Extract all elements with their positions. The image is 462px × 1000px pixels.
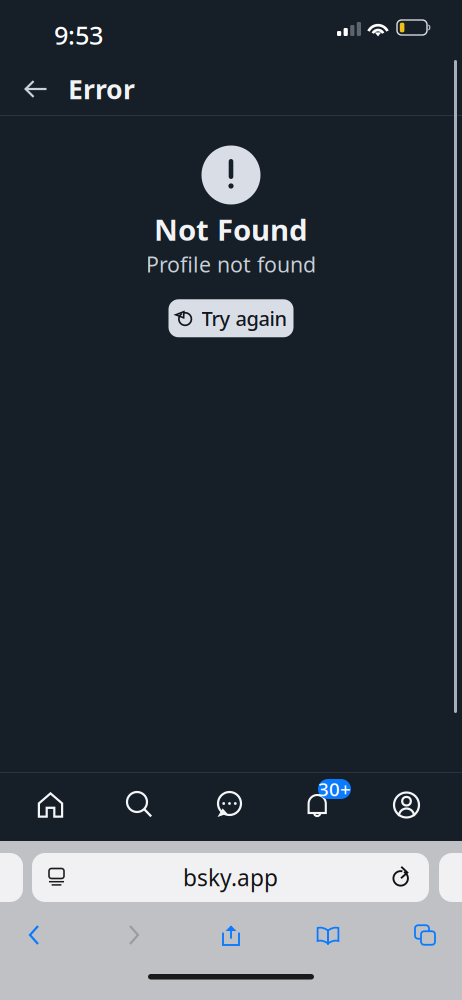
button[interactable]: Error	[68, 66, 135, 112]
button[interactable]: Home	[6, 776, 95, 834]
button[interactable]: bsky.app	[32, 853, 429, 902]
button[interactable]: Share	[201, 912, 261, 958]
button[interactable]: Search	[95, 776, 184, 834]
button[interactable]: Try again	[168, 299, 293, 337]
staticText: Error	[68, 71, 135, 107]
button[interactable]: Chat	[184, 776, 273, 834]
staticText: Profile not found	[146, 250, 316, 278]
button[interactable]: Tabs	[395, 912, 455, 958]
button[interactable]: Notifications	[273, 776, 362, 834]
staticText: 30+	[318, 777, 351, 801]
button[interactable]: Forward	[104, 912, 164, 958]
staticText: Not Found	[154, 210, 308, 249]
button[interactable]: Bookmarks	[298, 912, 358, 958]
button[interactable]: Back	[4, 912, 64, 958]
staticText: Try again	[201, 305, 287, 332]
staticText: bsky.app	[183, 862, 278, 892]
button[interactable]: Back	[13, 66, 59, 112]
button[interactable]: Profile	[362, 776, 451, 834]
staticText: 9:53	[54, 18, 103, 52]
